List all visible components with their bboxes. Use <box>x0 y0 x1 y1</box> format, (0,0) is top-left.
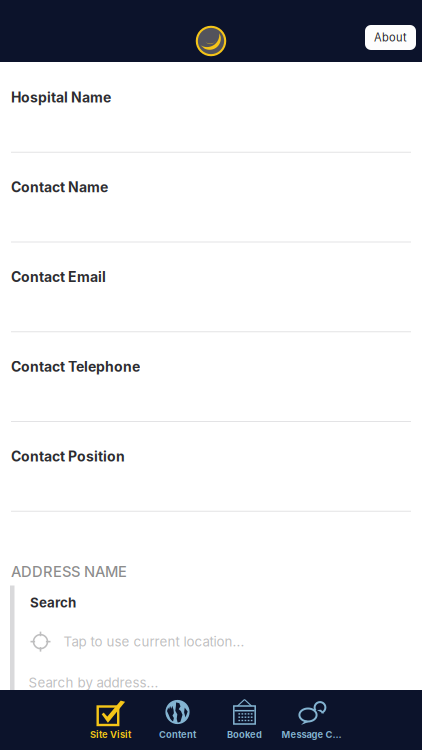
staticText: Tap to use current location... <box>63 634 244 650</box>
button[interactable]: Booked <box>211 690 278 750</box>
staticText: Contact Telephone <box>11 358 140 375</box>
button[interactable]: Search by address... <box>14 652 414 691</box>
button[interactable]: Contact Telephone <box>0 332 422 422</box>
staticText: Content <box>159 729 196 740</box>
staticText: Hospital Name <box>11 89 111 106</box>
staticText: Booked <box>227 729 262 740</box>
button[interactable]: Contact Position <box>0 422 422 512</box>
staticText: Search by address... <box>28 675 158 691</box>
button[interactable]: Content <box>144 690 211 750</box>
button[interactable]: Contact Email <box>0 242 422 332</box>
button[interactable]: About <box>365 25 416 50</box>
button[interactable]: Site Visit <box>77 690 144 750</box>
staticText: ADDRESS NAME <box>11 563 127 580</box>
button[interactable]: Tap to use current location... <box>14 611 414 652</box>
staticText: Message C... <box>281 729 341 740</box>
staticText: Contact Name <box>11 179 108 196</box>
staticText: About <box>374 31 407 44</box>
staticText: Search <box>30 594 76 611</box>
button[interactable]: Hospital Name <box>0 63 422 153</box>
button[interactable]: Message C... <box>278 690 345 750</box>
staticText: Contact Position <box>11 448 125 465</box>
staticText: Site Visit <box>90 729 131 740</box>
button[interactable]: Contact Name <box>0 153 422 243</box>
staticText: Contact Email <box>11 268 106 285</box>
